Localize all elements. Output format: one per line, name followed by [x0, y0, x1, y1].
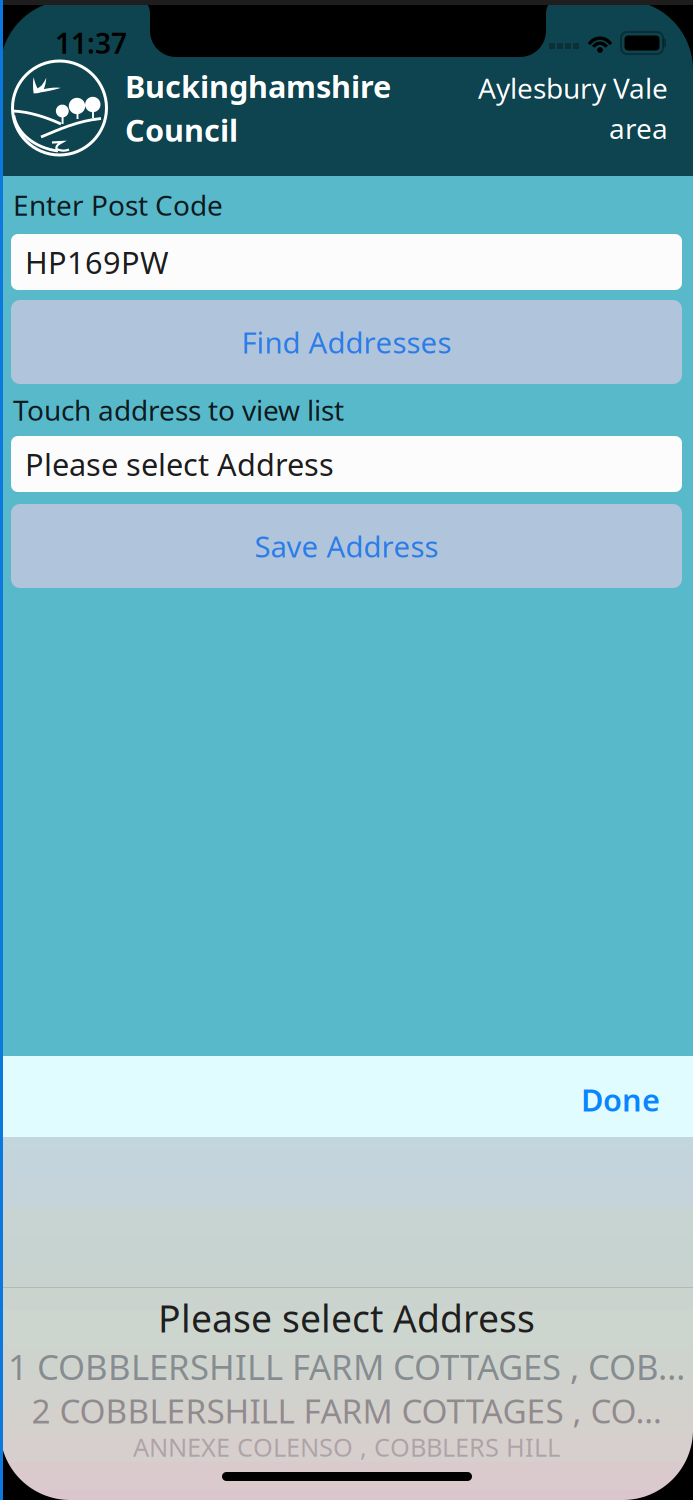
- staticText: Done: [581, 1079, 660, 1120]
- staticText: ANNEXE COLENSO , COBBLERS HILL: [133, 1430, 560, 1464]
- staticText: HP169PW: [25, 242, 169, 282]
- staticText: Save Address: [254, 526, 438, 565]
- button[interactable]: Find Addresses: [0, 290, 693, 384]
- staticText: Please select Address: [158, 1293, 535, 1343]
- staticText: Buckinghamshire: [125, 66, 391, 106]
- staticText: 11:37: [55, 24, 127, 62]
- staticText: Find Addresses: [241, 322, 451, 361]
- staticText: 1 COBBLERSHILL FARM COTTAGES , COB…: [8, 1343, 685, 1389]
- staticText: 2 COBBLERSHILL FARM COTTAGES , CO…: [31, 1388, 661, 1433]
- staticText: Touch address to view list: [13, 391, 344, 429]
- staticText: Council: [125, 109, 238, 150]
- button[interactable]: Save Address: [0, 492, 693, 588]
- staticText: area: [609, 109, 668, 147]
- button[interactable]: Please select Address: [0, 436, 693, 492]
- staticText: Please select Address: [25, 444, 334, 484]
- staticText: Aylesbury Vale: [478, 69, 668, 106]
- button[interactable]: Done: [565, 1065, 676, 1134]
- staticText: Enter Post Code: [13, 186, 223, 224]
